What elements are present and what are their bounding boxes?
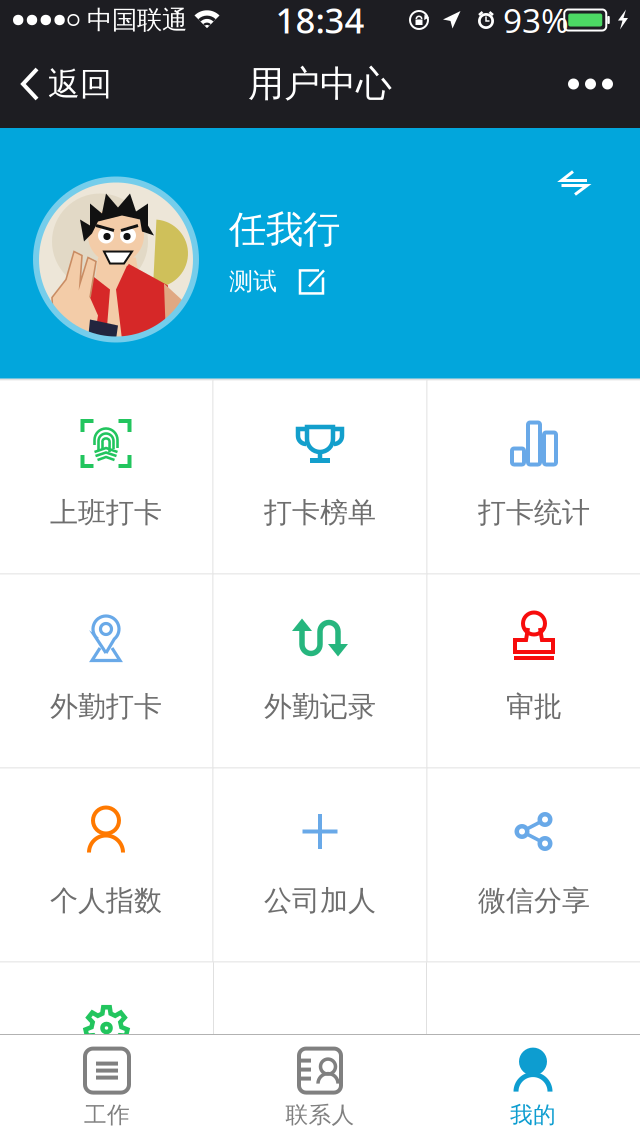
staticText: 18:34: [275, 0, 364, 43]
staticText: 工作: [84, 1101, 130, 1129]
staticText: 用户中心: [248, 62, 392, 106]
staticText: 联系人: [285, 1101, 354, 1129]
button[interactable]: 我的: [426, 1035, 639, 1136]
button[interactable]: 工作: [0, 1035, 213, 1136]
button[interactable]: 打卡统计: [427, 380, 640, 573]
staticText: 打卡统计: [478, 495, 590, 530]
staticText: 外勤记录: [264, 689, 376, 724]
staticText: 公司加人: [264, 883, 376, 918]
button[interactable]: Switch account: [544, 154, 604, 212]
staticText: 我的: [510, 1101, 556, 1129]
staticText: 审批: [506, 689, 562, 724]
button[interactable]: More: [568, 62, 640, 105]
button[interactable]: 个人指数: [0, 768, 212, 961]
staticText: 返回: [48, 64, 112, 104]
staticText: 93%: [503, 0, 569, 42]
staticText: 中国联通: [87, 4, 187, 35]
staticText: 上班打卡: [50, 495, 162, 530]
button[interactable]: 返回: [0, 54, 112, 114]
button[interactable]: 微信分享: [427, 768, 640, 961]
button[interactable]: 上班打卡: [0, 380, 212, 573]
button[interactable]: 打卡榜单: [213, 380, 426, 573]
button[interactable]: 公司加人: [213, 768, 426, 961]
staticText: 外勤打卡: [50, 689, 162, 724]
staticText: 打卡榜单: [264, 495, 376, 530]
staticText: 任我行: [229, 207, 340, 252]
staticText: 个人指数: [50, 883, 162, 918]
button[interactable]: 外勤打卡: [0, 574, 212, 767]
button[interactable]: 审批: [427, 574, 640, 767]
staticText: 微信分享: [478, 883, 590, 918]
button[interactable]: Edit profile: [297, 266, 327, 296]
staticText: 测试: [229, 267, 277, 296]
button[interactable]: 联系人: [213, 1035, 426, 1136]
button[interactable]: 外勤记录: [213, 574, 426, 767]
